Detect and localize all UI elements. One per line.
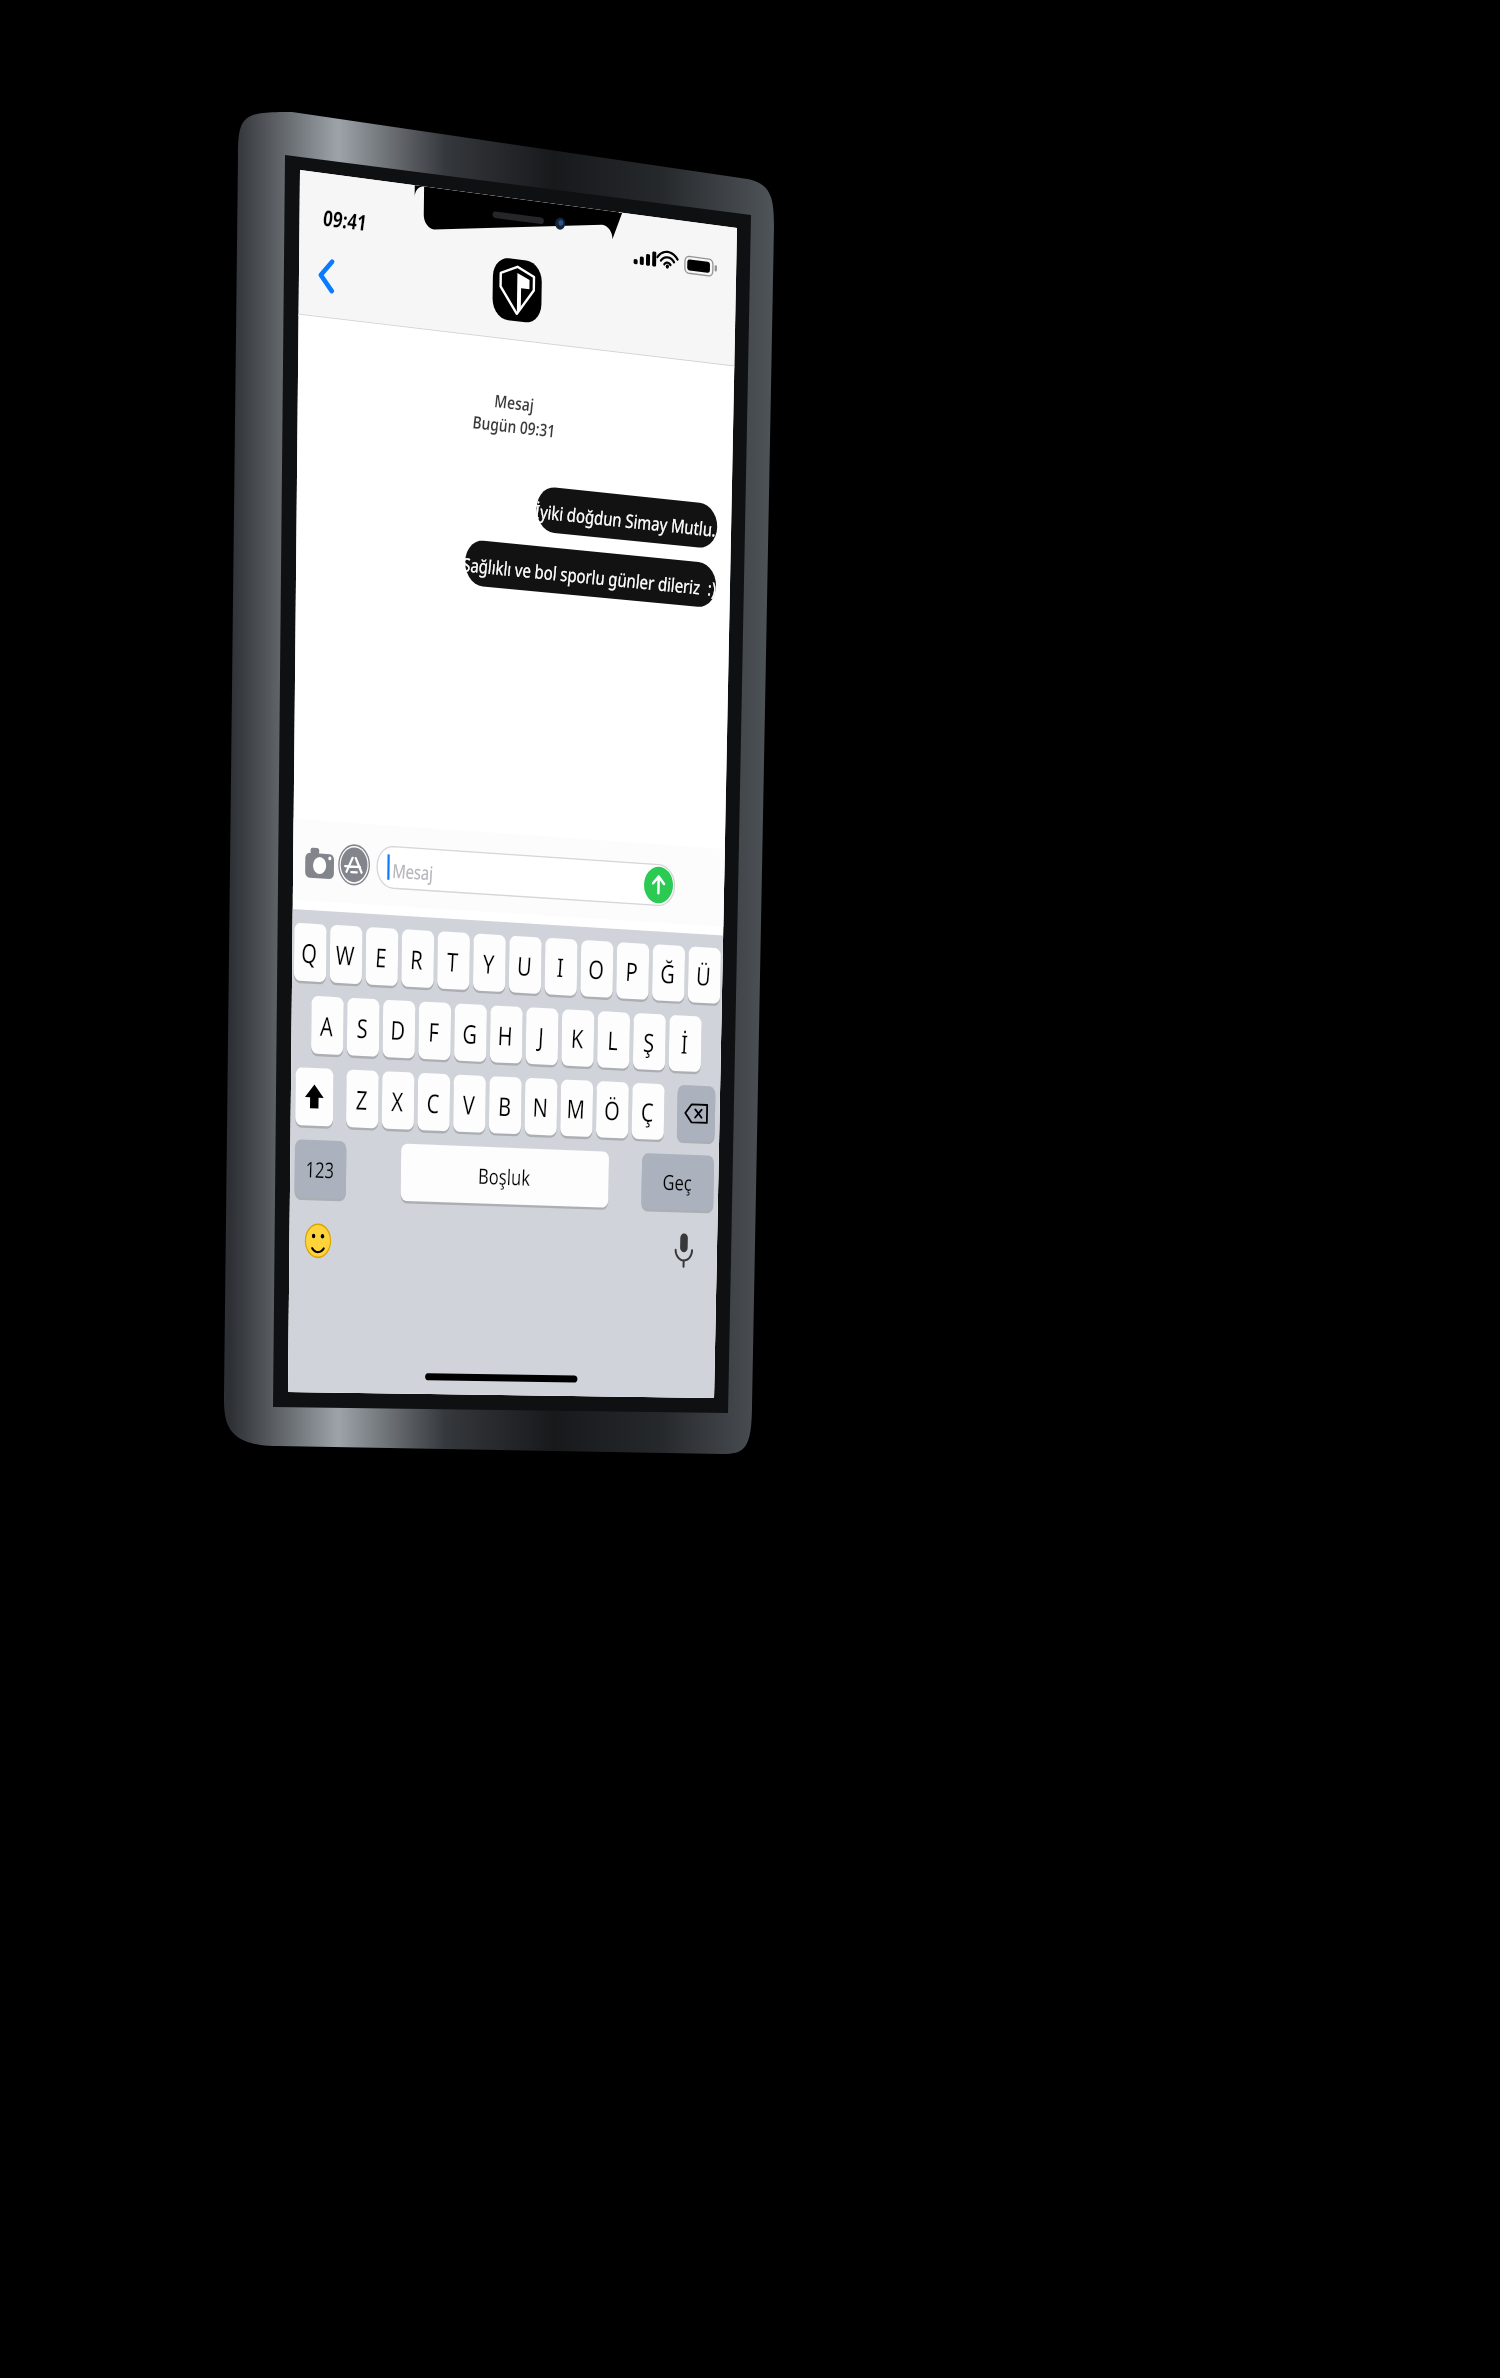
- button[interactable]: Send: [668, 1306, 742, 1380]
- button[interactable]: Back: [290, 212, 354, 276]
- button[interactable]: Camera: [296, 1322, 372, 1404]
- button[interactable]: Contact profile: [478, 212, 582, 304]
- button[interactable]: Message input: [442, 1308, 664, 1388]
- button[interactable]: Apps: [368, 1320, 444, 1402]
